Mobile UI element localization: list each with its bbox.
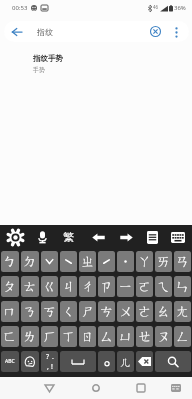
staticText: ㄞ — [157, 253, 171, 270]
staticText: ㄨ — [119, 303, 133, 320]
staticText: ㄜ — [138, 303, 152, 320]
button[interactable]: Clipboard — [141, 226, 163, 248]
button[interactable]: ㄛ — [136, 276, 153, 297]
button[interactable]: Move left — [87, 226, 109, 248]
staticText: ㄝ — [138, 328, 152, 345]
button[interactable]: ㄔ — [79, 276, 96, 297]
button[interactable]: ㄨ — [117, 301, 134, 322]
button[interactable]: Emoji — [21, 351, 39, 372]
button[interactable]: ㄝ — [136, 326, 153, 347]
button[interactable]: Move right — [115, 226, 137, 248]
button[interactable]: Backspace — [136, 351, 153, 372]
button[interactable]: ˊ — [98, 251, 115, 272]
button[interactable]: More options — [166, 22, 186, 42]
staticText: ㄐ — [62, 278, 76, 295]
button[interactable]: ㄎ — [41, 301, 58, 322]
button[interactable]: ㄗ — [98, 276, 115, 297]
button[interactable]: ˋ — [60, 251, 77, 272]
button[interactable]: ˙ — [117, 251, 134, 272]
button[interactable]: ㄤ — [174, 301, 191, 322]
button[interactable]: ㄅ — [1, 251, 19, 272]
button[interactable]: Keyboard layout — [167, 226, 189, 248]
button[interactable]: Clear text — [144, 21, 166, 42]
staticText: ㄌ — [23, 328, 37, 345]
button[interactable]: ㄟ — [155, 276, 172, 297]
button[interactable]: ㄇ — [1, 301, 19, 322]
button[interactable]: 指纹手势 — [0, 49, 192, 80]
button[interactable]: Back — [4, 21, 30, 42]
staticText: ㄈ — [3, 328, 17, 345]
button[interactable]: ㄩ — [117, 326, 134, 347]
button[interactable]: Symbols — [41, 351, 58, 372]
staticText: 指纹 — [37, 27, 53, 37]
button[interactable]: ㄘ — [98, 301, 115, 322]
button[interactable]: ㄦ — [117, 351, 134, 372]
button[interactable]: ㄢ — [174, 251, 191, 272]
button[interactable]: ㄕ — [79, 301, 96, 322]
staticText: ㄦ — [120, 355, 132, 369]
button[interactable]: ㄙ — [98, 326, 115, 347]
button[interactable]: ㄏ — [41, 326, 58, 347]
staticText: ㄊ — [23, 278, 37, 295]
button[interactable]: Back — [38, 377, 60, 399]
button[interactable]: ㄞ — [155, 251, 172, 272]
button[interactable]: Traditional Chinese — [57, 226, 79, 248]
button[interactable]: ˇ — [41, 251, 58, 272]
button[interactable]: ㄌ — [21, 326, 39, 347]
staticText: ㄣ — [176, 278, 190, 295]
staticText: ㄙ — [100, 328, 114, 345]
button[interactable]: Home — [85, 377, 107, 399]
staticText: ㄅ — [3, 253, 17, 270]
button[interactable]: ㄈ — [1, 326, 19, 347]
button[interactable]: ㄊ — [21, 276, 39, 297]
staticText: ㄍ — [43, 278, 57, 295]
staticText: ㄎ — [43, 303, 57, 320]
staticText: ㄩ — [119, 328, 133, 345]
staticText: ㄆ — [3, 278, 17, 295]
staticText: ㄒ — [62, 328, 76, 345]
button[interactable]: ㄣ — [174, 276, 191, 297]
button[interactable]: ㄧ — [117, 276, 134, 297]
staticText: ㄢ — [176, 253, 190, 270]
staticText: ㄑ — [62, 303, 76, 320]
staticText: ? — [46, 352, 50, 362]
button[interactable]: ㄆ — [1, 276, 19, 297]
button[interactable]: ㄐ — [60, 276, 77, 297]
button[interactable]: ㄥ — [174, 326, 191, 347]
staticText: ㄉ — [23, 253, 37, 270]
staticText: ㄋ — [23, 303, 37, 320]
staticText: ㄔ — [81, 278, 95, 295]
button[interactable]: ㄖ — [79, 326, 96, 347]
button[interactable]: ㄚ — [136, 251, 153, 272]
button[interactable]: ㄑ — [60, 301, 77, 322]
staticText: ! — [51, 362, 53, 372]
button[interactable]: ㄋ — [21, 301, 39, 322]
staticText: ㄡ — [157, 328, 171, 345]
button[interactable]: Search — [155, 351, 191, 372]
button[interactable]: Period — [98, 351, 115, 372]
button[interactable]: ㄠ — [155, 301, 172, 322]
button[interactable]: Recent apps — [130, 377, 152, 399]
staticText: ㄤ — [176, 303, 190, 320]
button[interactable]: ㄍ — [41, 276, 58, 297]
staticText: ㄛ — [138, 278, 152, 295]
button[interactable]: ㄒ — [60, 326, 77, 347]
button[interactable]: Voice input — [31, 226, 53, 248]
staticText: 36% — [174, 4, 186, 12]
button[interactable]: ABC mode — [1, 351, 19, 372]
staticText: 繁 — [63, 230, 74, 244]
button[interactable]: Space — [60, 351, 96, 372]
button[interactable]: ㄡ — [155, 326, 172, 347]
staticText: ㄟ — [157, 278, 171, 295]
staticText: ㄠ — [157, 303, 171, 320]
button[interactable]: ㄓ — [79, 251, 96, 272]
staticText: ㄘ — [100, 303, 114, 320]
button[interactable]: Hide keyboard — [165, 377, 187, 399]
staticText: 46 — [153, 4, 159, 10]
staticText: ㄕ — [81, 303, 95, 320]
button[interactable]: ㄜ — [136, 301, 153, 322]
button[interactable]: ㄉ — [21, 251, 39, 272]
button[interactable]: Settings — [4, 226, 26, 248]
staticText: ㄚ — [138, 253, 152, 270]
staticText: 手势 — [33, 66, 45, 74]
